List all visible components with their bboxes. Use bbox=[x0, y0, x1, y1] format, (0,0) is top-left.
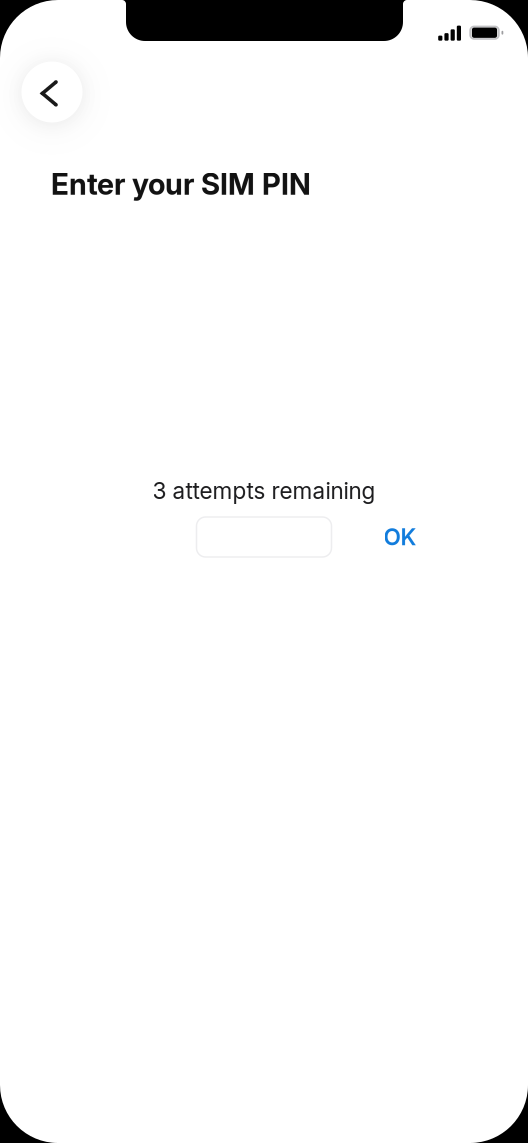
staticText: Enter your SIM PIN bbox=[51, 166, 311, 202]
staticText: 3 attempts remaining bbox=[152, 477, 375, 504]
button[interactable]: SIM PIN bbox=[196, 517, 331, 557]
button[interactable]: OK bbox=[370, 517, 430, 557]
button[interactable]: Back bbox=[14, 54, 90, 130]
staticText: OK bbox=[383, 523, 416, 551]
